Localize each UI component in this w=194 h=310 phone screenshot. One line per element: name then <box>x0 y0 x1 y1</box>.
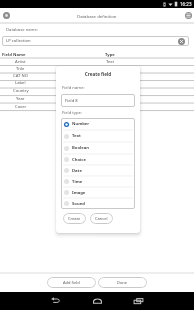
staticText: Title <box>16 66 25 72</box>
staticText: Cancel <box>95 216 108 221</box>
button[interactable]: Home <box>89 292 105 310</box>
staticText: Create <box>68 216 81 221</box>
staticText: Text <box>106 59 115 65</box>
staticText: Country <box>13 88 29 94</box>
staticText: Field Name <box>2 52 26 58</box>
button[interactable]: Title <box>0 65 194 72</box>
button[interactable]: Done <box>98 277 147 288</box>
staticText: Boolean <box>72 145 89 151</box>
button[interactable]: More options <box>182 8 194 23</box>
button[interactable]: Back <box>47 292 63 310</box>
staticText: Database name: <box>6 27 38 33</box>
button[interactable]: Year <box>0 95 194 103</box>
staticText: Add field <box>63 280 80 285</box>
button[interactable]: Label <box>0 79 194 87</box>
staticText: Artist <box>15 59 26 65</box>
button[interactable]: Artist <box>0 58 194 65</box>
staticText: Create field <box>56 71 140 77</box>
staticText: Text <box>106 73 115 79</box>
staticText: Field 8 <box>65 98 78 104</box>
button[interactable]: Recents <box>130 292 146 310</box>
button[interactable]: Image <box>61 187 135 198</box>
staticText: CAT NO <box>13 73 28 79</box>
staticText: Database definition <box>77 13 117 19</box>
staticText: Cover <box>15 104 27 110</box>
button[interactable]: Choice <box>61 154 135 165</box>
staticText: Text <box>72 133 81 139</box>
button[interactable]: LP collection <box>2 36 189 46</box>
button[interactable]: Clear <box>178 38 185 45</box>
staticText: Label <box>15 80 26 86</box>
button[interactable]: Boolean <box>61 142 135 154</box>
staticText: Year <box>16 96 25 102</box>
staticText: 16:23 <box>180 1 192 7</box>
staticText: Field type: <box>62 110 83 116</box>
button[interactable]: Text <box>61 130 135 142</box>
staticText: Date <box>72 168 82 174</box>
button[interactable]: Sound <box>61 198 135 209</box>
button[interactable]: Time <box>61 176 135 187</box>
staticText: LP collection <box>6 38 31 44</box>
button[interactable]: Field 8 <box>61 94 135 107</box>
staticText: Type <box>105 52 115 58</box>
button[interactable]: Cancel <box>90 213 113 224</box>
button[interactable]: Navigate up <box>2 8 11 23</box>
staticText: Done <box>117 280 128 285</box>
staticText: Field name: <box>62 85 85 91</box>
staticText: Number <box>72 121 90 127</box>
button[interactable]: Country <box>0 87 194 95</box>
button[interactable]: Number <box>61 118 135 130</box>
button[interactable]: Create <box>63 213 86 224</box>
staticText: Image <box>104 104 117 110</box>
staticText: Sound <box>72 201 86 207</box>
button[interactable]: CAT NO <box>0 72 194 79</box>
staticText: Image <box>72 190 86 196</box>
staticText: Time <box>72 179 83 185</box>
button[interactable]: Add field <box>47 277 96 288</box>
button[interactable]: Cover <box>0 103 194 111</box>
button[interactable]: Date <box>61 165 135 176</box>
staticText: Choice <box>72 157 86 163</box>
